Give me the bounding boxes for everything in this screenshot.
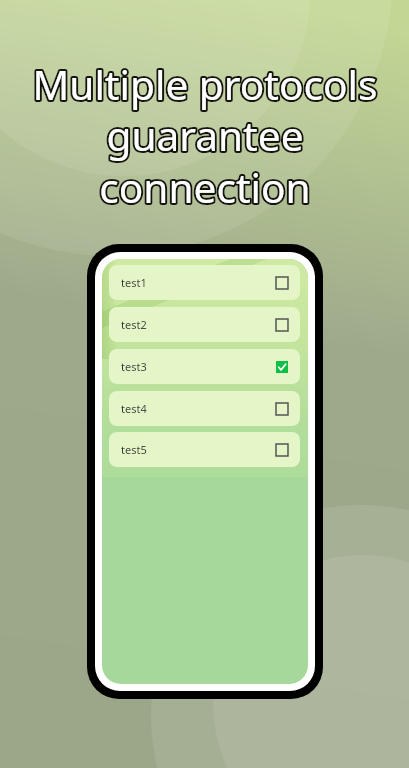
staticText: test1 [121,275,147,290]
button[interactable]: test2 [109,307,300,342]
button[interactable]: test4 [109,391,300,426]
staticText: test2 [121,317,147,332]
staticText: test3 [121,359,147,374]
button[interactable]: test1 [109,265,300,300]
staticText: test5 [121,442,147,457]
button[interactable]: test3 [109,349,300,384]
staticText: connection [99,160,311,215]
staticText: Multiple protocols [32,57,378,112]
staticText: connection [99,160,311,215]
staticText: guarantee [106,108,304,163]
button[interactable]: test5 [109,432,300,467]
staticText: test4 [121,401,147,416]
staticText: guarantee [106,108,304,163]
staticText: Multiple protocols [32,57,378,112]
